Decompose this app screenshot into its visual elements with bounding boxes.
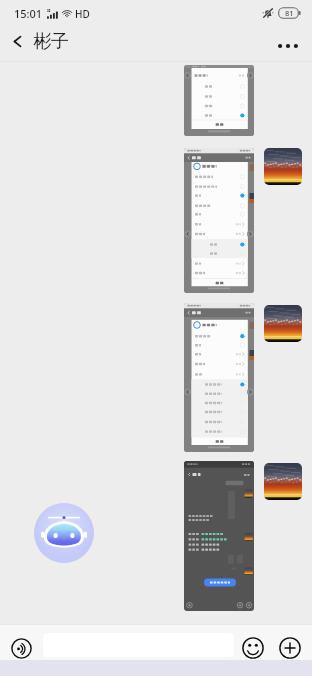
staticText: 彬子 bbox=[33, 30, 69, 53]
button[interactable]: More bbox=[276, 634, 303, 661]
button[interactable]: Contact avatar bbox=[264, 463, 302, 500]
button[interactable]: Emoji bbox=[239, 634, 266, 661]
button[interactable]: Contact avatar bbox=[264, 148, 302, 185]
button[interactable]: Screenshot image bbox=[184, 65, 254, 136]
staticText: 15:01 bbox=[14, 6, 43, 21]
button[interactable]: More options bbox=[264, 32, 312, 62]
button[interactable]: Screenshot image bbox=[184, 148, 254, 293]
button[interactable]: Voice input bbox=[7, 634, 36, 663]
button[interactable]: Screenshot image bbox=[184, 303, 254, 452]
button[interactable]: Screenshot image bbox=[184, 461, 254, 611]
button[interactable]: Contact avatar bbox=[264, 305, 302, 342]
button[interactable]: Assistant avatar bbox=[34, 503, 94, 563]
staticText: HD bbox=[75, 7, 90, 21]
button[interactable]: Back bbox=[0, 24, 79, 62]
staticText: 81 bbox=[285, 8, 294, 18]
